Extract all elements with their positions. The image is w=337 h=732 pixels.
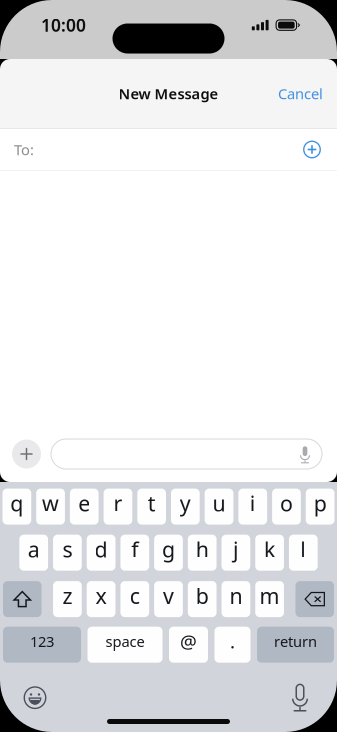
button[interactable]: e bbox=[70, 489, 99, 525]
staticText: n bbox=[229, 581, 242, 610]
button[interactable]: Add contact bbox=[298, 135, 326, 163]
button[interactable]: p bbox=[306, 489, 334, 525]
button[interactable]: h bbox=[188, 535, 217, 571]
staticText: a bbox=[28, 535, 40, 563]
button[interactable]: Cancel bbox=[266, 75, 335, 112]
button[interactable]: Delete bbox=[295, 581, 334, 617]
button[interactable]: m bbox=[255, 581, 284, 617]
staticText: h bbox=[196, 535, 209, 563]
button[interactable]: @ bbox=[169, 627, 208, 663]
button[interactable]: u bbox=[205, 489, 233, 525]
staticText: y bbox=[180, 489, 191, 517]
button[interactable]: 123 bbox=[3, 627, 81, 663]
staticText: r bbox=[113, 489, 122, 517]
button[interactable]: w bbox=[36, 489, 65, 525]
button[interactable]: d bbox=[87, 535, 115, 571]
button[interactable]: g bbox=[154, 535, 183, 571]
staticText: z bbox=[62, 581, 72, 610]
button[interactable]: f bbox=[120, 535, 149, 571]
staticText: Cancel bbox=[278, 84, 323, 103]
staticText: o bbox=[280, 489, 293, 517]
staticText: p bbox=[314, 489, 327, 517]
button[interactable]: t bbox=[137, 489, 166, 525]
staticText: space bbox=[105, 631, 144, 651]
button[interactable]: c bbox=[120, 581, 149, 617]
staticText: l bbox=[300, 535, 306, 563]
staticText: . bbox=[230, 629, 235, 654]
button[interactable]: y bbox=[171, 489, 200, 525]
staticText: New Message bbox=[118, 84, 218, 103]
staticText: f bbox=[131, 535, 138, 563]
staticText: c bbox=[130, 581, 140, 610]
button[interactable]: n bbox=[222, 581, 250, 617]
button[interactable]: b bbox=[188, 581, 217, 617]
staticText: k bbox=[264, 535, 275, 563]
button[interactable]: s bbox=[53, 535, 82, 571]
button[interactable]: j bbox=[222, 535, 250, 571]
button[interactable]: o bbox=[272, 489, 301, 525]
button[interactable]: l bbox=[289, 535, 318, 571]
button[interactable]: z bbox=[53, 581, 82, 617]
button[interactable]: k bbox=[255, 535, 284, 571]
button[interactable]: x bbox=[87, 581, 115, 617]
button[interactable]: return bbox=[257, 627, 334, 663]
staticText: g bbox=[162, 535, 175, 563]
button[interactable]: . bbox=[214, 627, 250, 663]
staticText: x bbox=[96, 581, 107, 610]
staticText: j bbox=[233, 535, 239, 563]
staticText: @ bbox=[180, 629, 197, 654]
button[interactable]: r bbox=[104, 489, 132, 525]
staticText: s bbox=[62, 535, 72, 563]
button[interactable]: space bbox=[87, 627, 162, 663]
staticText: return bbox=[274, 631, 317, 651]
staticText: 10:00 bbox=[41, 14, 86, 37]
staticText: q bbox=[10, 489, 23, 517]
staticText: w bbox=[42, 489, 59, 517]
staticText: e bbox=[78, 489, 90, 517]
button[interactable] bbox=[51, 439, 322, 469]
button[interactable]: Dictation bbox=[278, 678, 322, 712]
button[interactable]: a bbox=[19, 535, 48, 571]
button[interactable]: v bbox=[154, 581, 183, 617]
button[interactable]: Emoji keyboard bbox=[13, 678, 57, 712]
button[interactable]: Shift bbox=[3, 581, 41, 617]
staticText: To: bbox=[14, 140, 34, 159]
staticText: d bbox=[95, 535, 108, 563]
staticText: v bbox=[163, 581, 174, 610]
staticText: u bbox=[213, 489, 226, 517]
button[interactable]: i bbox=[238, 489, 267, 525]
staticText: b bbox=[196, 581, 209, 610]
staticText: 123 bbox=[30, 631, 54, 651]
staticText: t bbox=[148, 489, 156, 517]
button[interactable]: q bbox=[2, 489, 31, 525]
staticText: m bbox=[260, 581, 280, 610]
staticText: i bbox=[250, 489, 256, 517]
button[interactable]: Add attachment bbox=[9, 436, 44, 471]
